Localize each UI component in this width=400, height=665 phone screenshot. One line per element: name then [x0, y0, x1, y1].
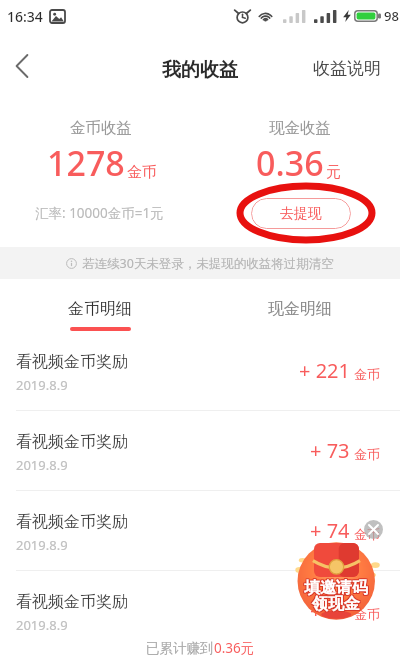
staticText: 2019.8.9	[16, 616, 68, 634]
staticText: 已累计赚到	[146, 640, 214, 657]
staticText: 若连续30天未登录，未提现的收益将过期清空	[82, 255, 334, 272]
staticText: 领现金	[311, 595, 359, 615]
staticText: 领现金	[312, 593, 360, 613]
staticText: 2019.8.9	[16, 376, 68, 394]
staticText: 我的收益	[162, 58, 238, 82]
staticText: 看视频金币奖励	[16, 512, 128, 532]
staticText: 去提现	[280, 205, 322, 223]
staticText: 看视频金币奖励	[16, 592, 128, 612]
staticText: 看视频金币奖励	[16, 432, 128, 452]
staticText: 2019.8.9	[16, 536, 68, 554]
staticText: 2019.8.9	[16, 456, 68, 474]
staticText: 16:34	[7, 7, 43, 26]
button[interactable]: Back	[3, 47, 41, 85]
staticText: 金币	[127, 163, 157, 182]
staticText: 填邀请码	[304, 577, 368, 597]
staticText: 金币	[354, 446, 380, 462]
staticText: + 73	[310, 437, 350, 464]
staticText: 收益说明	[313, 58, 381, 79]
button[interactable]: 去提现	[251, 198, 351, 229]
staticText: 领现金	[313, 595, 361, 615]
staticText: 填邀请码	[305, 578, 369, 598]
staticText: + 221	[299, 357, 350, 384]
button[interactable]: Invite code, get cash	[294, 540, 382, 622]
staticText: 填邀请码	[305, 579, 369, 599]
staticText: 汇率: 10000金币=1元	[35, 204, 164, 222]
staticText: 金币	[354, 526, 380, 542]
staticText: 0.36	[256, 140, 324, 186]
staticText: 领现金	[313, 594, 361, 614]
staticText: 领现金	[311, 593, 359, 613]
button[interactable]: 看视频金币奖励	[0, 491, 400, 571]
staticText: 填邀请码	[303, 579, 367, 599]
staticText: 现金明细	[268, 299, 332, 319]
staticText: + 74	[310, 517, 350, 544]
staticText: 98	[384, 7, 399, 25]
staticText: 填邀请码	[305, 577, 369, 597]
staticText: 1278	[47, 140, 125, 186]
staticText: 领现金	[312, 594, 360, 614]
staticText: 0.36元	[214, 639, 255, 657]
button[interactable]: 现金明细	[200, 279, 400, 335]
button[interactable]: 看视频金币奖励	[0, 571, 400, 651]
button[interactable]: Close	[364, 520, 383, 539]
staticText: 填邀请码	[303, 578, 367, 598]
button[interactable]: 金币明细	[0, 279, 200, 335]
staticText: 填邀请码	[303, 577, 367, 597]
button[interactable]: 看视频金币奖励	[0, 331, 400, 411]
staticText: 领现金	[311, 594, 359, 614]
staticText: 金币明细	[68, 299, 132, 319]
staticText: 看视频金币奖励	[16, 352, 128, 372]
staticText: 填邀请码	[304, 578, 368, 598]
staticText: 元	[326, 163, 341, 182]
staticText: 金币	[354, 366, 380, 382]
button[interactable]: 看视频金币奖励	[0, 411, 400, 491]
staticText: 现金收益	[269, 118, 331, 138]
staticText: + 68	[310, 597, 350, 624]
staticText: 领现金	[312, 595, 360, 615]
staticText: 金币	[354, 606, 380, 622]
staticText: 金币收益	[70, 118, 132, 138]
staticText: 领现金	[313, 593, 361, 613]
staticText: 填邀请码	[304, 579, 368, 599]
button[interactable]: 收益说明	[307, 53, 387, 84]
